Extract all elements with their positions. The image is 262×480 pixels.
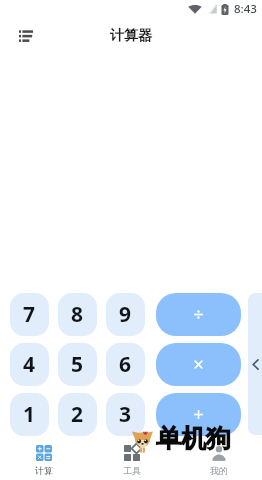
staticText: 2 [71, 400, 84, 429]
staticText: 9 [119, 300, 132, 329]
staticText: 8:43 [234, 1, 257, 17]
button[interactable]: 工具 [88, 437, 175, 480]
button[interactable]: 9 [106, 293, 145, 336]
staticText: 8 [71, 300, 84, 329]
staticText: 6 [119, 350, 132, 379]
button[interactable] [156, 343, 241, 386]
button[interactable]: 我的 [175, 437, 262, 480]
staticText: 3 [119, 400, 132, 429]
button[interactable] [156, 293, 241, 336]
button[interactable]: More keys [248, 293, 262, 435]
staticText: 我的 [210, 465, 228, 476]
button[interactable]: 计算 [0, 437, 88, 480]
staticText: 4 [23, 350, 36, 379]
button[interactable]: 6 [106, 343, 145, 386]
staticText: 1 [23, 400, 36, 429]
button[interactable]: 7 [10, 293, 49, 336]
staticText: 5 [71, 350, 84, 379]
button[interactable]: 2 [58, 393, 97, 436]
staticText: 单机狗 [156, 423, 231, 454]
button[interactable] [156, 393, 241, 436]
staticText: 计算器 [110, 27, 152, 45]
button[interactable]: 3 [106, 393, 145, 436]
button[interactable]: 4 [10, 343, 49, 386]
staticText: 工具 [123, 465, 141, 476]
staticText: 计算 [35, 465, 53, 476]
button[interactable]: 1 [10, 393, 49, 436]
staticText: 7 [23, 300, 36, 329]
button[interactable]: 5 [58, 343, 97, 386]
button[interactable]: 8 [58, 293, 97, 336]
button[interactable]: Menu [12, 21, 40, 49]
